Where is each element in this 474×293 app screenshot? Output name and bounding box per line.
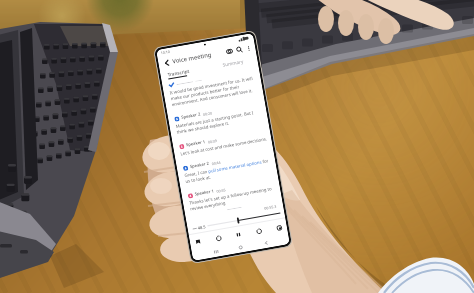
staticText: Thanks let's set up a follow up meeting … — [189, 184, 277, 212]
button[interactable]: More options — [244, 43, 253, 53]
staticText: Materials are just a starting point. But… — [175, 108, 264, 135]
button[interactable]: Forward 10 seconds — [253, 225, 265, 237]
button[interactable]: Search — [234, 44, 245, 55]
button[interactable]: Summary — [222, 56, 258, 68]
staticText: 00:55.3 — [264, 203, 277, 211]
button[interactable]: Rewind 10 seconds — [213, 232, 225, 244]
staticText: 00:39 — [207, 138, 217, 144]
staticText: Great, I can pull some material options … — [184, 157, 272, 184]
button[interactable]: Edit — [224, 46, 235, 57]
staticText: 00:55 — [216, 187, 226, 194]
staticText: It would be good investment for us. It w… — [169, 74, 259, 107]
staticText: Speaker 2 — [189, 161, 210, 170]
staticText: Voice meeting — [172, 51, 212, 65]
staticText: Speaker 1 — [194, 188, 215, 198]
button[interactable]: Bookmark — [192, 236, 204, 248]
staticText: Summary — [222, 58, 244, 68]
staticText: 00:20 — [203, 110, 212, 117]
staticText: 00:44 — [211, 160, 221, 166]
staticText: Transcript — [167, 68, 190, 77]
staticText: Speaker 2 — [181, 111, 201, 121]
staticText: 10:10 — [160, 49, 171, 55]
button[interactable]: Save transcript — [273, 222, 285, 233]
button[interactable]: Transcript — [167, 68, 190, 79]
button[interactable]: Pause — [233, 229, 244, 240]
button[interactable]: Back — [161, 57, 173, 69]
staticText: Let's look at cost and make some decisio… — [180, 135, 268, 156]
staticText: Speaker 1 — [186, 139, 206, 148]
staticText: 48.5 — [197, 224, 206, 231]
